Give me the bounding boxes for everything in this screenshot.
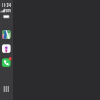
button[interactable]: Phone (2, 58, 11, 67)
button[interactable]: Maps (2, 30, 11, 39)
button[interactable]: Podcasts (2, 44, 11, 53)
button[interactable]: All apps (2, 84, 11, 93)
